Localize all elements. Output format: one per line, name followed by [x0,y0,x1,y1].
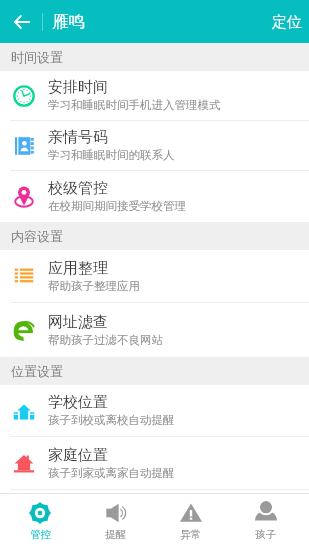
button[interactable]: 异常 [153,494,228,550]
button[interactable]: Back [8,8,36,36]
button[interactable]: 孩子 [228,494,303,550]
staticText: 异常 [180,528,201,541]
button[interactable]: 亲情号码 [0,121,309,170]
staticText: 时间设置 [11,49,63,65]
staticText: 位置设置 [11,363,63,379]
button[interactable]: 安排时间 [0,71,309,120]
button[interactable]: 定位 [262,6,309,38]
button[interactable]: 校级管控 [0,171,309,222]
staticText: 定位 [272,13,302,32]
staticText: 亲情号码 [48,128,108,147]
button[interactable]: 网址滤查 [0,303,309,357]
staticText: 孩子到校或离校自动提醒 [48,413,175,427]
staticText: 学习和睡眠时间的联系人 [48,148,175,162]
button[interactable]: 家庭位置 [0,437,309,489]
staticText: 雁鸣 [52,11,85,32]
staticText: 提醒 [105,528,126,541]
staticText: 家庭位置 [48,446,108,465]
button[interactable]: 学校位置 [0,385,309,436]
button[interactable]: 管控 [2,494,78,550]
staticText: 学习和睡眠时间手机进入管理模式 [48,98,221,112]
staticText: 管控 [30,528,51,541]
staticText: 校级管控 [48,179,108,198]
staticText: 孩子 [255,528,276,541]
button[interactable]: 应用整理 [0,250,309,302]
staticText: 安排时间 [48,78,108,97]
button[interactable]: 提醒 [78,494,153,550]
staticText: 帮助孩子过滤不良网站 [48,333,163,347]
staticText: 帮助孩子整理应用 [48,279,140,293]
staticText: 网址滤查 [48,313,108,332]
staticText: 应用整理 [48,259,108,278]
staticText: 学校位置 [48,393,108,412]
staticText: 孩子到家或离家自动提醒 [48,466,175,480]
staticText: 在校期间期间接受学校管理 [48,199,186,213]
staticText: 内容设置 [11,228,63,244]
